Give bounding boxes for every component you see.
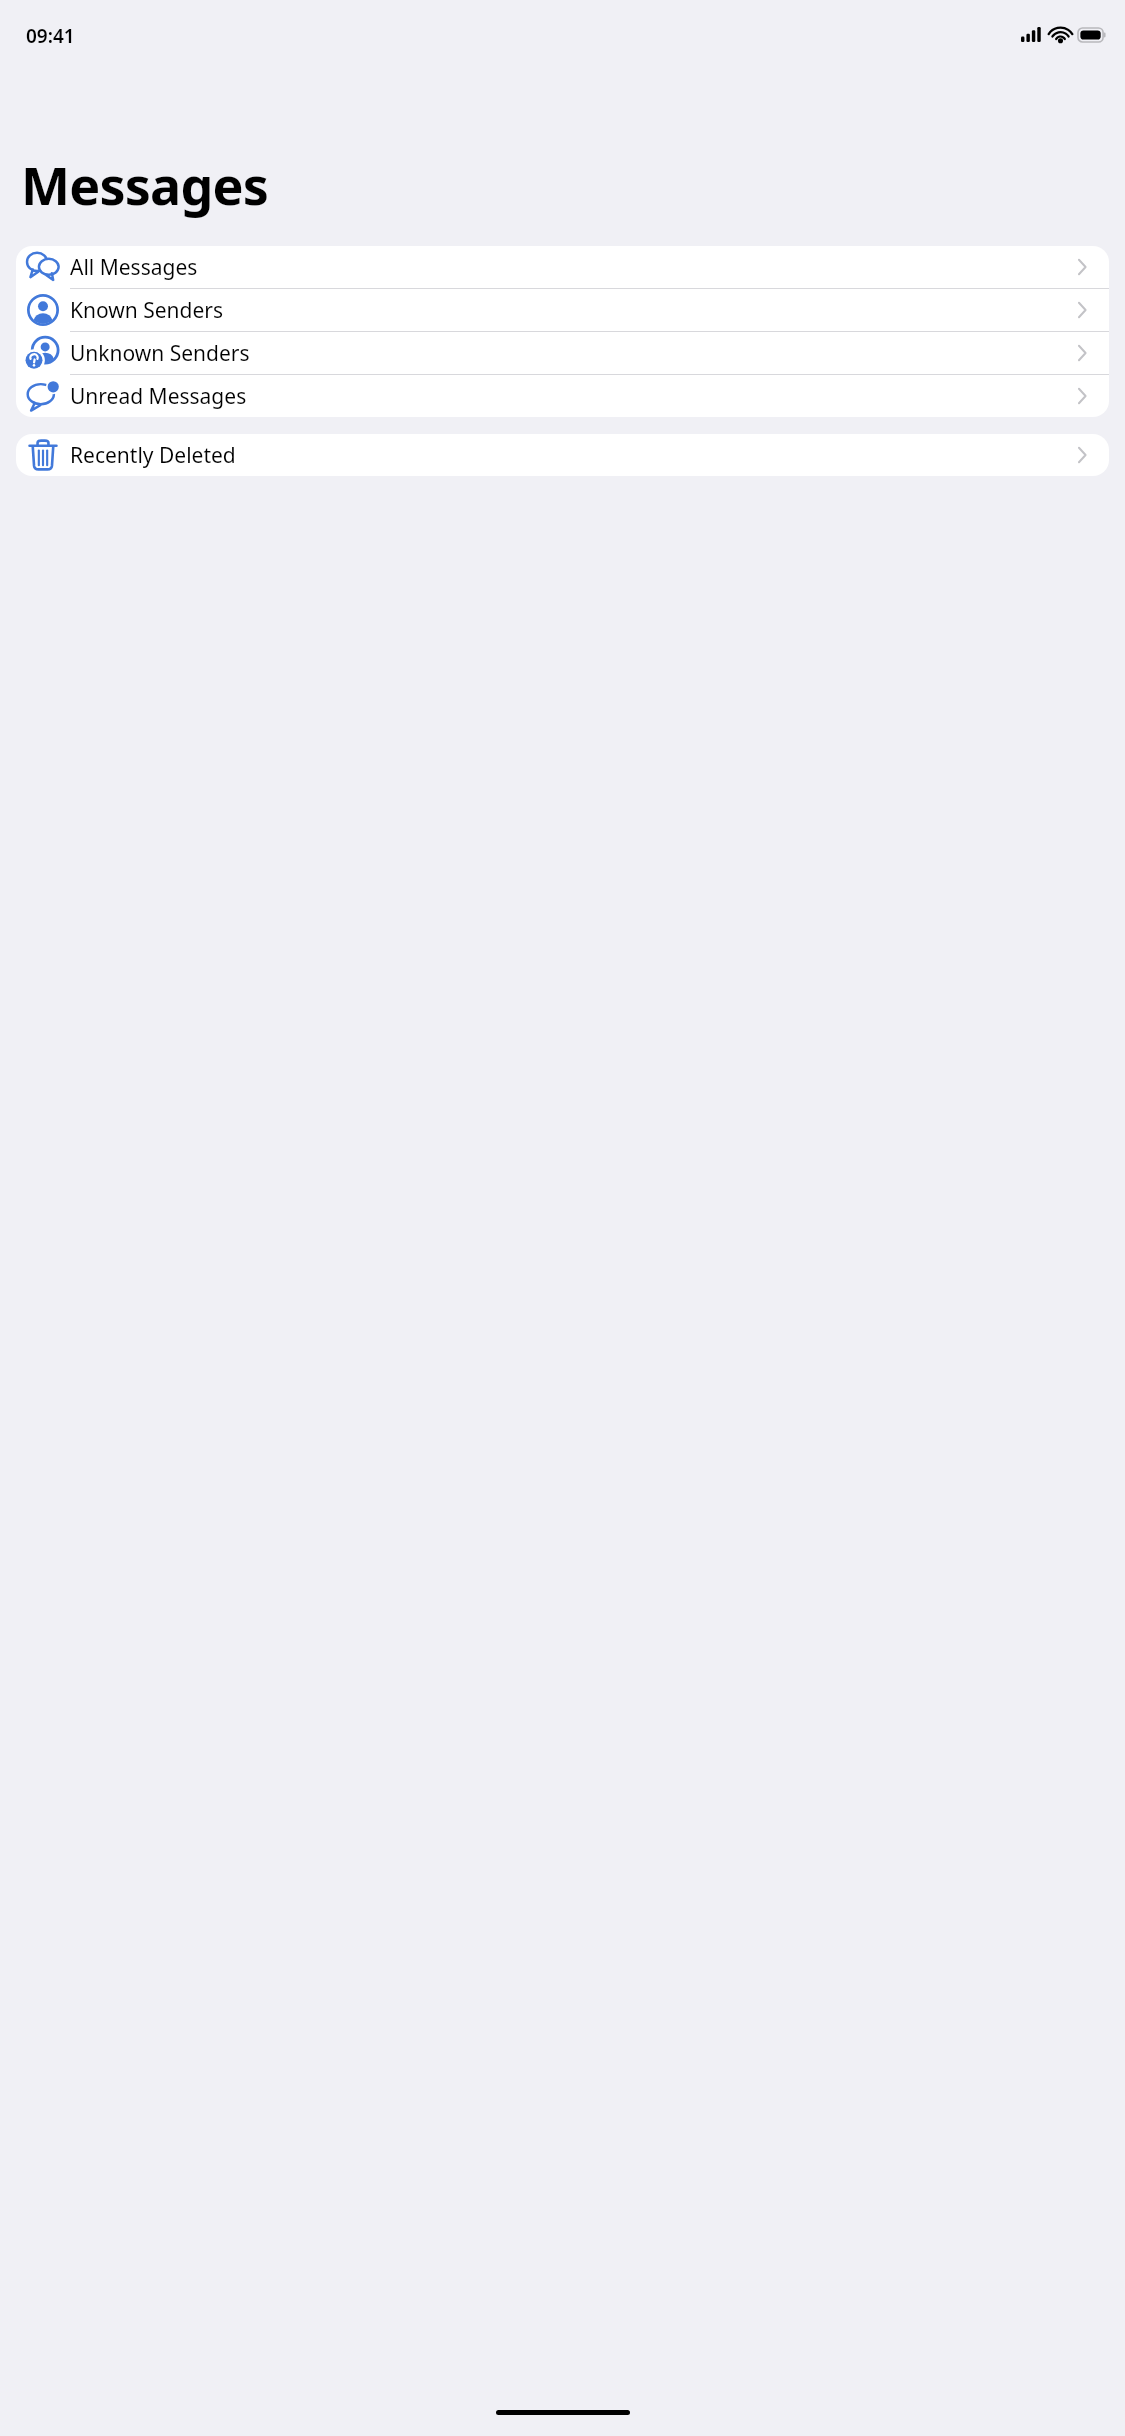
button[interactable]: Known Senders: [16, 289, 1109, 332]
button[interactable]: Unread Messages: [16, 375, 1109, 417]
button[interactable]: Unknown Senders: [16, 332, 1109, 375]
staticText: Unread Messages: [70, 382, 1073, 411]
staticText: Recently Deleted: [70, 441, 1073, 470]
button[interactable]: Recently Deleted: [16, 434, 1109, 476]
staticText: 09:41: [26, 23, 75, 49]
button[interactable]: All Messages: [16, 246, 1109, 289]
staticText: Known Senders: [70, 296, 1073, 325]
staticText: Unknown Senders: [70, 339, 1073, 368]
staticText: All Messages: [70, 253, 1073, 282]
staticText: Messages: [21, 149, 269, 220]
